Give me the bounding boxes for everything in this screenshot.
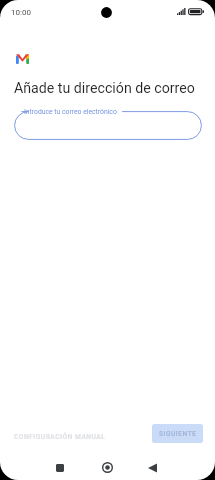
staticText: Introduce tu correo electrónico [24,108,117,116]
staticText: 10:00 [11,8,31,17]
button[interactable]: Home [95,455,120,480]
button[interactable]: Recent apps [47,455,72,480]
button[interactable]: Back [140,455,165,480]
button[interactable]: SIGUIENTE [152,424,203,443]
staticText: SIGUIENTE [159,430,197,438]
button[interactable]: CONFIGURACIÓN MANUAL [12,428,108,446]
staticText: Añade tu dirección de correo [14,80,195,97]
staticText: CONFIGURACIÓN MANUAL [14,433,106,441]
button[interactable]: Introduce tu correo electrónico [14,111,202,140]
